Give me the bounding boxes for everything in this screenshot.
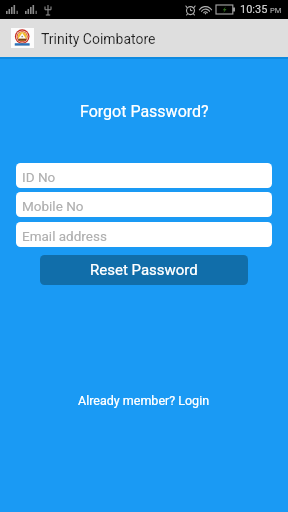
button[interactable]: Reset Password <box>40 255 248 285</box>
staticText: Already member? Login <box>78 393 210 408</box>
staticText: 10:35 <box>240 3 268 16</box>
staticText: PM <box>270 6 282 15</box>
button[interactable]: Mobile No <box>16 192 272 217</box>
button[interactable]: Trinity Coimbatore logo <box>11 28 34 48</box>
staticText: Reset Password <box>90 261 198 279</box>
button[interactable]: ID No <box>16 163 272 188</box>
staticText: Forgot Password? <box>80 102 209 121</box>
button[interactable]: Already member? Login <box>68 388 220 413</box>
staticText: ID No <box>22 169 56 185</box>
button[interactable]: Email address <box>16 222 272 247</box>
staticText: Trinity Coimbatore <box>41 31 156 47</box>
staticText: Email address <box>22 228 107 244</box>
staticText: Mobile No <box>22 198 84 214</box>
